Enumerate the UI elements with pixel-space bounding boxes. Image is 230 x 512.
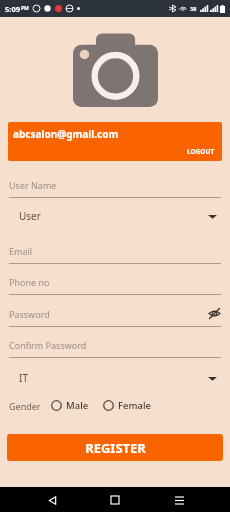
button[interactable]: Home xyxy=(103,488,127,512)
button[interactable]: Male xyxy=(51,399,89,412)
staticText: User Name xyxy=(9,179,57,191)
staticText: LOGOUT xyxy=(187,147,215,156)
button[interactable]: User Name xyxy=(0,168,230,198)
staticText: Male xyxy=(66,399,89,412)
staticText: 5:09 xyxy=(5,4,20,14)
staticText: Phone no xyxy=(9,276,50,288)
button[interactable]: Recent apps xyxy=(167,488,191,512)
staticText: Confirm Password xyxy=(9,339,87,351)
button[interactable]: Email xyxy=(0,234,230,264)
staticText: PM xyxy=(21,5,29,12)
staticText: Female xyxy=(118,399,151,412)
staticText: User xyxy=(19,209,41,223)
button[interactable]: Confirm Password xyxy=(0,328,230,358)
staticText: Gender xyxy=(9,400,41,412)
button[interactable]: IT xyxy=(0,360,230,396)
button[interactable]: Back xyxy=(40,488,64,512)
staticText: abcsalon@gmail.com xyxy=(13,127,119,141)
button[interactable]: User xyxy=(0,198,230,234)
staticText: 38 xyxy=(190,5,197,12)
button[interactable]: Password xyxy=(0,296,230,327)
button[interactable]: LOGOUT xyxy=(187,147,222,161)
staticText: REGISTER xyxy=(85,439,146,457)
staticText: IT xyxy=(19,371,28,385)
staticText: Password xyxy=(9,308,50,320)
button[interactable]: Female xyxy=(103,399,151,412)
staticText: Email xyxy=(9,245,33,257)
button[interactable]: Phone no xyxy=(0,265,230,295)
button[interactable]: REGISTER xyxy=(7,434,223,461)
other: Toggle password visibility xyxy=(208,307,221,320)
